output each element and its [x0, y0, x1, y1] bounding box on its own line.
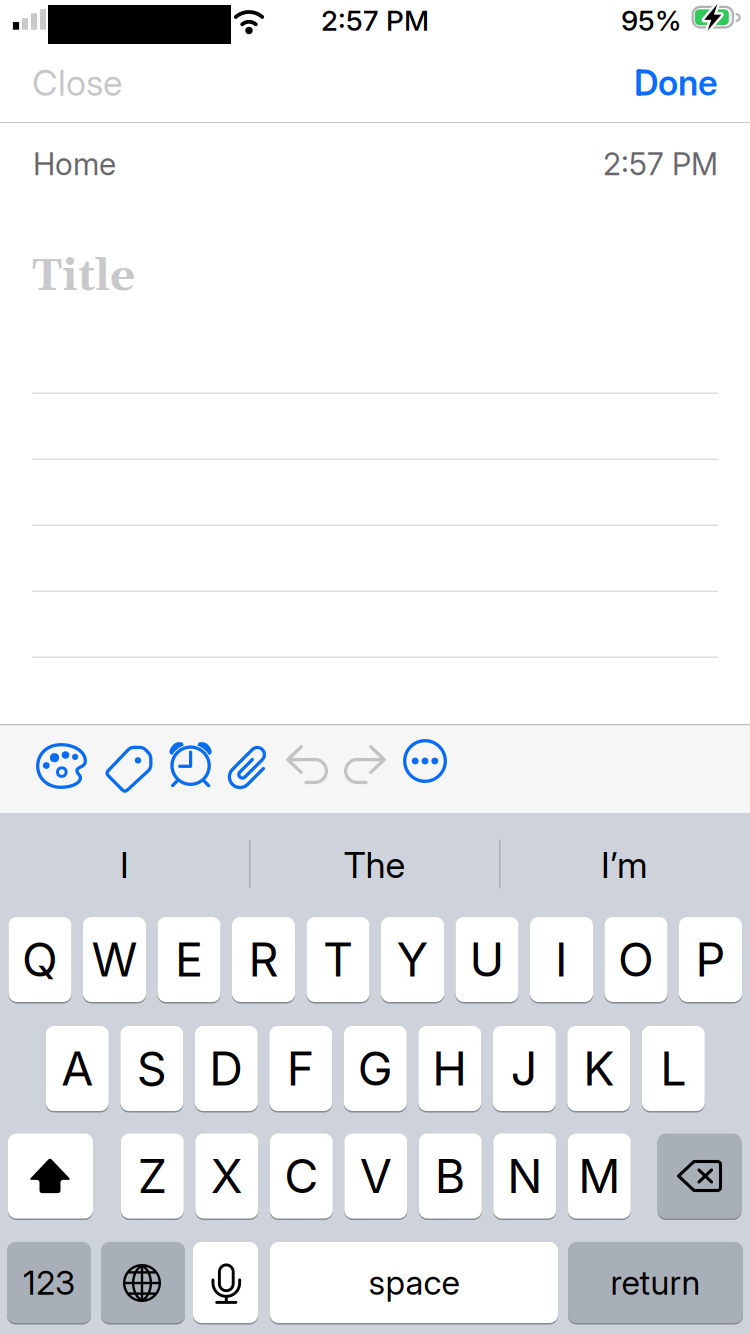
- button[interactable]: B: [419, 1133, 482, 1218]
- staticText: space: [368, 1262, 459, 1303]
- staticText: T: [323, 931, 353, 988]
- button[interactable]: Attach: [228, 745, 270, 793]
- button[interactable]: E: [157, 917, 220, 1002]
- button[interactable]: Tags: [105, 746, 151, 792]
- button[interactable]: return: [568, 1242, 743, 1323]
- button[interactable]: S: [120, 1026, 183, 1111]
- button[interactable]: Reminder: [167, 742, 215, 790]
- button[interactable]: Q: [8, 917, 71, 1002]
- staticText: C: [284, 1148, 318, 1204]
- button[interactable]: I: [0, 837, 249, 893]
- button[interactable]: I: [530, 917, 593, 1002]
- button[interactable]: The: [250, 837, 499, 893]
- button[interactable]: Dictate: [193, 1242, 258, 1323]
- button[interactable]: P: [679, 917, 742, 1002]
- button[interactable]: W: [83, 917, 146, 1002]
- staticText: The: [343, 843, 405, 887]
- button[interactable]: Formatting: [36, 743, 88, 789]
- button[interactable]: R: [232, 917, 295, 1002]
- button[interactable]: F: [269, 1026, 332, 1111]
- staticText: J: [511, 1040, 538, 1097]
- staticText: I: [120, 843, 129, 887]
- button[interactable]: T: [306, 917, 369, 1002]
- staticText: A: [61, 1040, 93, 1097]
- staticText: R: [248, 931, 278, 988]
- button[interactable]: A: [46, 1026, 109, 1111]
- staticText: Close: [32, 62, 122, 104]
- staticText: L: [660, 1040, 686, 1097]
- button[interactable]: L: [642, 1026, 705, 1111]
- button[interactable]: Redo: [345, 745, 386, 784]
- staticText: B: [435, 1148, 466, 1204]
- staticText: 2:57 PM: [603, 145, 718, 182]
- staticText: W: [91, 931, 137, 988]
- staticText: X: [211, 1148, 243, 1204]
- button[interactable]: H: [418, 1026, 481, 1111]
- button[interactable]: Done: [530, 44, 750, 122]
- staticText: I: [555, 931, 568, 988]
- button[interactable]: Delete: [657, 1133, 741, 1218]
- button[interactable]: N: [493, 1133, 556, 1218]
- button[interactable]: G: [344, 1026, 407, 1111]
- staticText: E: [175, 931, 203, 988]
- staticText: K: [583, 1040, 614, 1097]
- staticText: G: [358, 1040, 393, 1097]
- staticText: U: [469, 931, 504, 988]
- staticText: 95%: [621, 4, 682, 37]
- staticText: return: [610, 1262, 700, 1303]
- staticText: V: [360, 1148, 392, 1204]
- staticText: F: [287, 1040, 315, 1097]
- button[interactable]: M: [568, 1133, 631, 1218]
- staticText: O: [618, 931, 654, 988]
- button[interactable]: V: [344, 1133, 407, 1218]
- button[interactable]: Z: [121, 1133, 184, 1218]
- button[interactable]: U: [455, 917, 518, 1002]
- button[interactable]: O: [604, 917, 667, 1002]
- button[interactable]: D: [195, 1026, 258, 1111]
- staticText: D: [209, 1040, 243, 1097]
- button[interactable]: I’m: [500, 837, 749, 893]
- staticText: M: [578, 1148, 620, 1204]
- button[interactable]: K: [567, 1026, 630, 1111]
- button[interactable]: Undo: [286, 745, 327, 784]
- staticText: Title: [32, 249, 135, 305]
- button[interactable]: J: [493, 1026, 556, 1111]
- staticText: Home: [33, 145, 116, 182]
- staticText: Q: [22, 931, 58, 988]
- button[interactable]: Y: [381, 917, 444, 1002]
- staticText: Y: [396, 931, 428, 988]
- button[interactable]: Shift: [8, 1133, 93, 1218]
- button[interactable]: C: [270, 1133, 333, 1218]
- staticText: I’m: [601, 843, 648, 887]
- staticText: P: [695, 931, 725, 988]
- staticText: 123: [23, 1262, 75, 1303]
- button[interactable]: Home: [0, 144, 321, 184]
- staticText: N: [507, 1148, 542, 1204]
- button[interactable]: space: [270, 1242, 558, 1323]
- button[interactable]: More: [403, 739, 447, 783]
- button[interactable]: 123: [7, 1242, 91, 1323]
- staticText: S: [137, 1040, 167, 1097]
- staticText: Z: [138, 1148, 167, 1204]
- button[interactable]: X: [195, 1133, 258, 1218]
- staticText: 2:57 PM: [321, 4, 429, 37]
- staticText: Done: [634, 62, 718, 104]
- staticText: H: [432, 1040, 467, 1097]
- button[interactable]: Next keyboard: [101, 1242, 185, 1323]
- button[interactable]: Close: [0, 44, 220, 122]
